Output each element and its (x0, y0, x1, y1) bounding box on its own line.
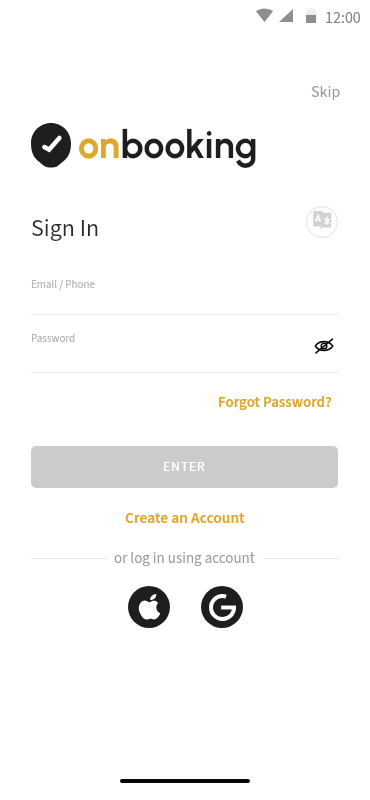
button[interactable]: Sign in with Apple (128, 586, 170, 628)
staticText: Skip (311, 81, 341, 104)
staticText: or log in using account (114, 548, 255, 569)
button[interactable]: Forgot Password? (209, 388, 341, 417)
button[interactable]: ENTER (31, 446, 338, 488)
staticText: 12:00 (325, 7, 361, 24)
staticText: ENTER (163, 457, 206, 477)
staticText: Sign In (31, 211, 100, 245)
button[interactable]: Change language (306, 206, 338, 238)
staticText: onbooking (78, 122, 258, 168)
button[interactable]: Sign in with Google (201, 586, 243, 628)
staticText: Forgot Password? (218, 392, 332, 413)
staticText: Create an Account (125, 507, 245, 529)
staticText: Email / Phone (31, 277, 95, 293)
button[interactable]: Create an Account (115, 502, 255, 534)
button[interactable]: Skip (303, 76, 349, 109)
staticText: Password (31, 331, 76, 347)
button[interactable]: Show password (313, 337, 335, 355)
